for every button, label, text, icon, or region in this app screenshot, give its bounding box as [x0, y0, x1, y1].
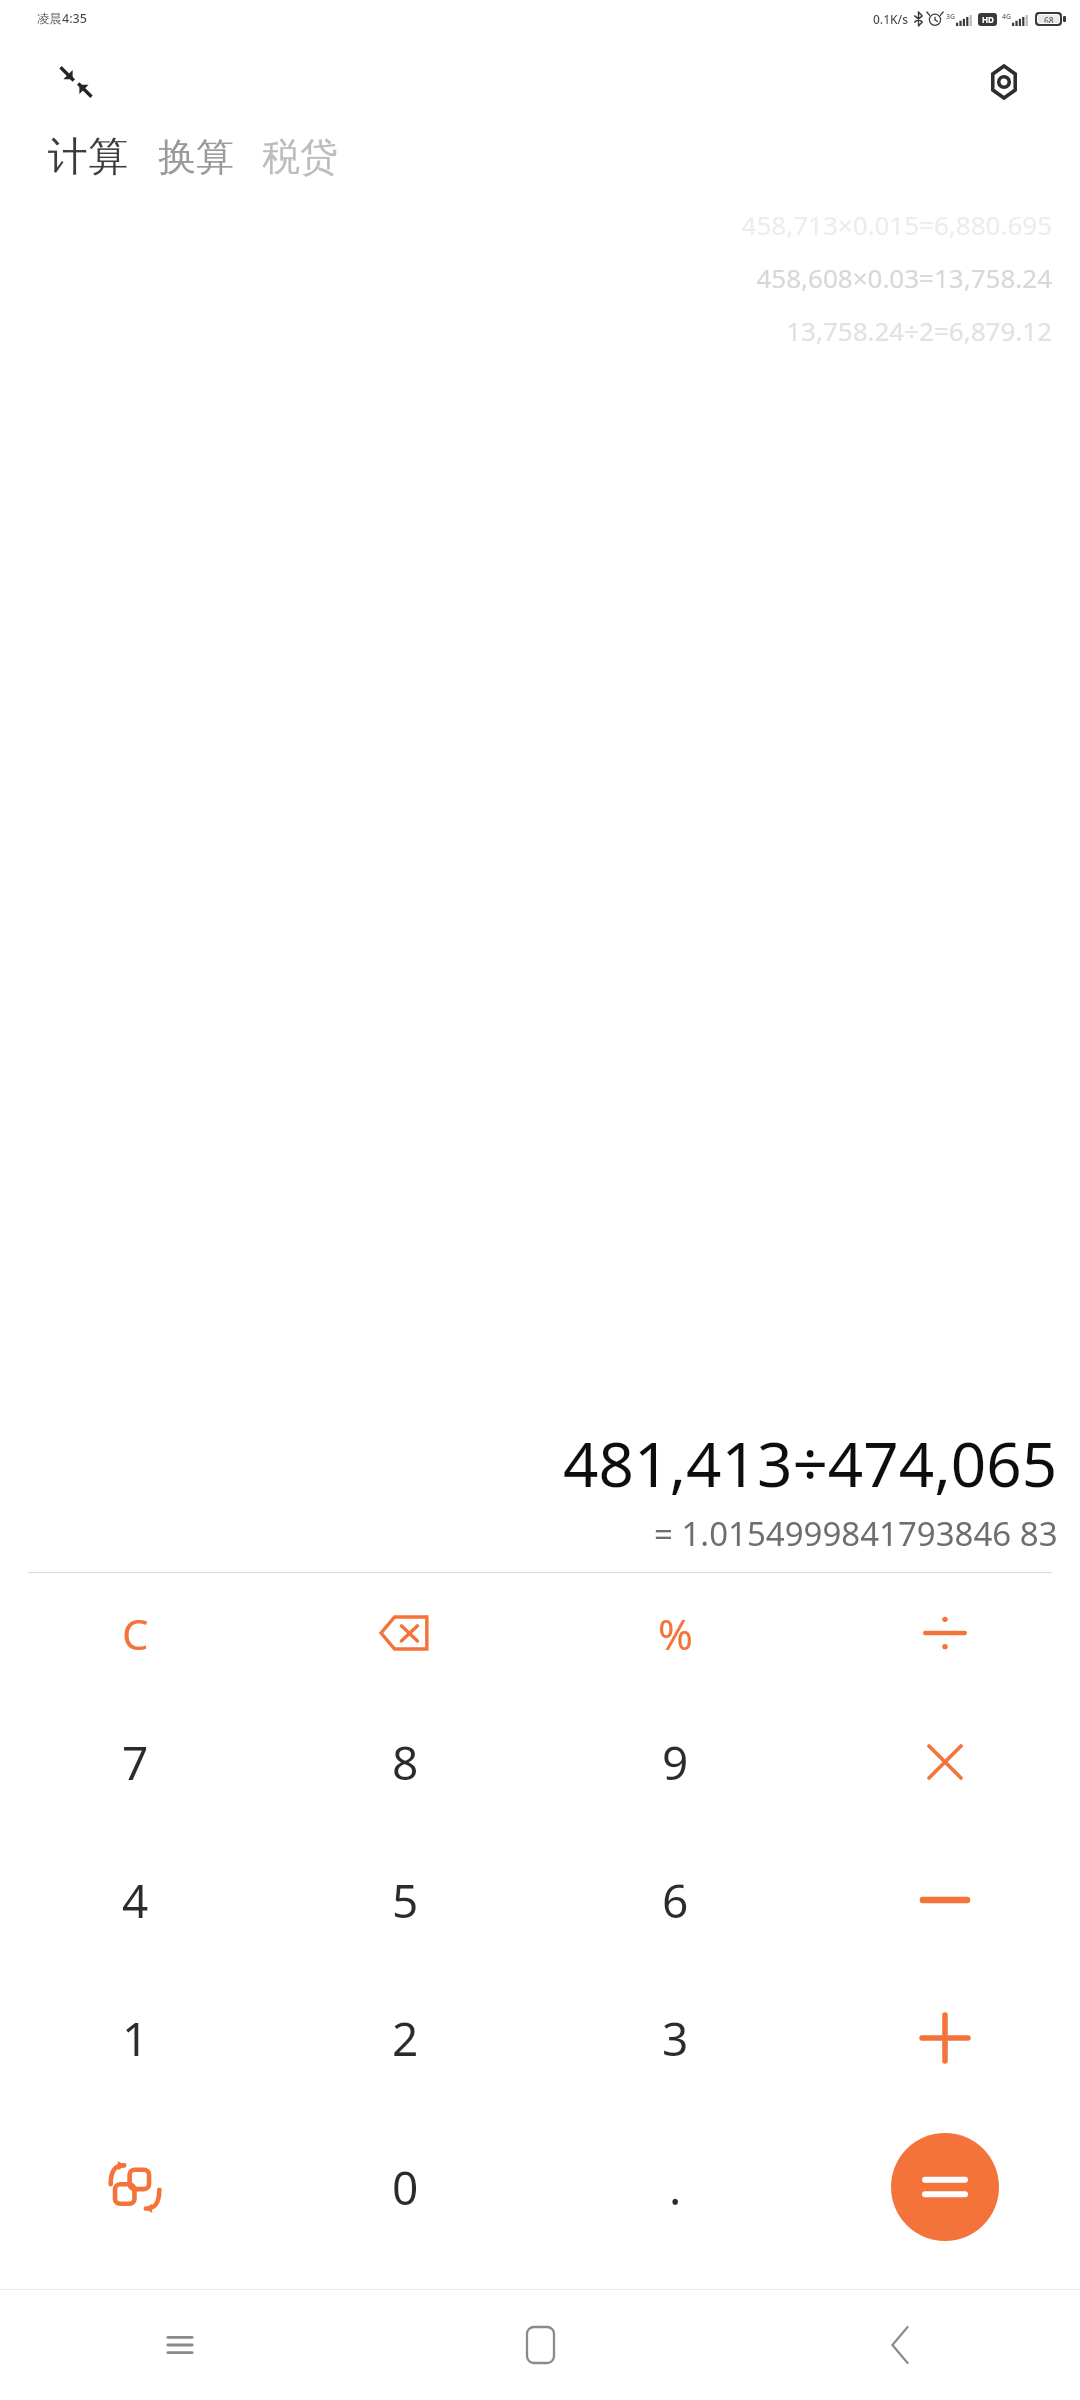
button[interactable]: C	[0, 1573, 270, 1693]
button[interactable]: Home	[360, 2290, 720, 2400]
button[interactable]: 3	[540, 1969, 810, 2107]
button[interactable]	[810, 1573, 1080, 1693]
button[interactable]: Recents	[0, 2290, 360, 2400]
button[interactable]: 7	[0, 1693, 270, 1831]
staticText: 13,758.24÷2=6,879.12	[786, 313, 1052, 348]
button[interactable]	[810, 1969, 1080, 2107]
button[interactable]	[810, 1831, 1080, 1969]
staticText: 换算	[158, 133, 234, 181]
staticText: 7	[122, 1731, 149, 1794]
staticText: 6	[662, 1869, 689, 1932]
button[interactable]: 换算	[154, 129, 238, 185]
staticText: 9	[662, 1731, 689, 1794]
staticText: HD	[982, 14, 994, 25]
button[interactable]: 5	[270, 1831, 540, 1969]
button[interactable]: Settings	[974, 52, 1034, 112]
button[interactable]: Swap	[0, 2107, 270, 2267]
button[interactable]: %	[540, 1573, 810, 1693]
button[interactable]: 6	[540, 1831, 810, 1969]
staticText: .	[669, 2156, 682, 2219]
staticText: 3G	[946, 12, 956, 22]
button[interactable]: 0	[270, 2107, 540, 2267]
button[interactable]: 1	[0, 1969, 270, 2107]
button[interactable]: 计算	[44, 127, 132, 185]
staticText: 3	[662, 2007, 689, 2070]
staticText: = 1.0154999841793846 83	[654, 1511, 1058, 1556]
staticText: 4	[122, 1869, 149, 1932]
staticText: 458,713×0.015=6,880.695	[741, 207, 1052, 242]
staticText: 4G	[1002, 12, 1012, 22]
staticText: 1	[122, 2007, 149, 2070]
staticText: 8	[392, 1731, 419, 1794]
staticText: 计算	[48, 131, 128, 181]
button[interactable]: .	[540, 2107, 810, 2267]
button[interactable]: Collapse	[48, 54, 104, 110]
staticText: 68	[1044, 15, 1054, 23]
button[interactable]: 2	[270, 1969, 540, 2107]
button[interactable]: 9	[540, 1693, 810, 1831]
button[interactable]: 4	[0, 1831, 270, 1969]
staticText: %	[658, 1605, 693, 1662]
staticText: 税贷	[262, 133, 338, 181]
button[interactable]: Backspace	[270, 1573, 540, 1693]
staticText: C	[122, 1605, 149, 1662]
staticText: 481,413÷474,065	[563, 1421, 1058, 1505]
button[interactable]	[810, 1693, 1080, 1831]
staticText: 0.1K/s	[873, 11, 909, 27]
staticText: 5	[392, 1869, 419, 1932]
button[interactable]: 8	[270, 1693, 540, 1831]
staticText: 凌晨4:35	[37, 10, 87, 27]
button[interactable]: Equals	[891, 2133, 999, 2241]
staticText: 458,608×0.03=13,758.24	[756, 260, 1052, 295]
staticText: 2	[392, 2007, 419, 2070]
button[interactable]: Back	[720, 2290, 1080, 2400]
button[interactable]: 税贷	[258, 129, 342, 185]
staticText: 0	[392, 2156, 419, 2219]
